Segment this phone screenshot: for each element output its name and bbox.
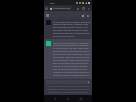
- button[interactable]: Reload: [82, 7, 85, 10]
- button[interactable]: Account: [45, 7, 48, 10]
- button[interactable]: Home: [66, 97, 70, 101]
- button[interactable]: chat.openai.com: [49, 6, 72, 10]
- button[interactable]: New chat: [81, 14, 84, 17]
- staticText: Un mas obtendo en los legumes petrolater…: [53, 41, 90, 77]
- staticText: 9:41: [50, 1, 55, 4]
- button[interactable]: Share: [76, 7, 79, 10]
- button[interactable]: Share: [86, 14, 89, 17]
- staticText: ChatGPT puede cometer errores importante…: [46, 85, 90, 94]
- staticText: Te va preocupant abierto que esta polite…: [53, 20, 91, 38]
- button[interactable]: [46, 80, 90, 84]
- button[interactable]: Recents: [79, 97, 83, 101]
- staticText: chat.openai.com: [53, 7, 71, 10]
- button[interactable]: More options: [88, 6, 90, 11]
- button[interactable]: Back: [53, 97, 57, 101]
